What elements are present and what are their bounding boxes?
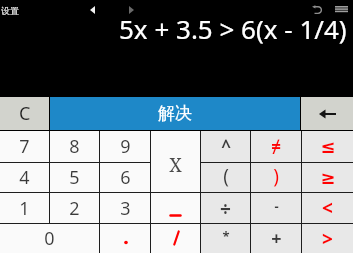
button[interactable]: 6 [100, 163, 150, 192]
button[interactable]: 7 [0, 131, 49, 162]
button[interactable]: ≤ [302, 131, 353, 162]
staticText: 5 [69, 165, 80, 190]
button[interactable]: ) [251, 163, 301, 192]
staticText: 8 [69, 134, 80, 159]
staticText: ( [223, 163, 229, 189]
staticText: 9 [120, 134, 131, 159]
staticText: ÷ [220, 196, 231, 222]
button[interactable]: 4 [0, 163, 49, 192]
button[interactable]: 2 [50, 193, 99, 223]
button[interactable]: 9 [100, 131, 150, 162]
button[interactable]: X [151, 131, 200, 192]
button[interactable]: Undo [308, 0, 326, 18]
button[interactable]: ( [201, 163, 250, 192]
button[interactable]: Backspace [301, 97, 353, 130]
staticText: ) [273, 163, 279, 189]
button[interactable]: > [302, 224, 353, 253]
staticText: - [274, 197, 279, 215]
staticText: 4 [19, 165, 30, 190]
button[interactable]: 设置 [1, 5, 19, 16]
staticText: ^ [221, 135, 231, 158]
staticText: ≤ [320, 136, 336, 157]
button[interactable]: ≠ [251, 131, 301, 162]
staticText: 0 [44, 226, 55, 251]
button[interactable]: Minus sign [151, 193, 200, 223]
staticText: + [271, 226, 282, 251]
button[interactable]: Divide [151, 224, 200, 253]
button[interactable]: 0 [0, 224, 99, 253]
button[interactable]: 8 [50, 131, 99, 162]
button[interactable]: ≥ [302, 163, 353, 192]
staticText: X [169, 152, 182, 178]
staticText: C [19, 101, 31, 126]
button[interactable]: 1 [0, 193, 49, 223]
button[interactable]: - [251, 193, 301, 223]
button[interactable]: ÷ [201, 193, 250, 223]
staticText: 6 [120, 165, 131, 190]
button[interactable]: Decimal point [100, 224, 150, 253]
button[interactable]: + [251, 224, 301, 253]
staticText: 2 [69, 196, 80, 221]
staticText: 设置 [1, 5, 19, 16]
button[interactable]: Previous expression [84, 2, 100, 18]
button[interactable]: 解决 [50, 97, 300, 130]
staticText: 3 [120, 196, 131, 221]
button[interactable]: C [0, 97, 49, 130]
button[interactable]: * [201, 224, 250, 253]
staticText: 5x + 3.5 > 6(x - 1/4) [119, 11, 347, 46]
staticText: 1 [19, 196, 30, 221]
button[interactable]: < [302, 193, 353, 223]
button[interactable]: Menu [333, 0, 350, 17]
staticText: 解决 [158, 103, 192, 124]
staticText: * [222, 227, 230, 245]
staticText: ≥ [320, 167, 336, 188]
button[interactable]: Next expression [123, 2, 139, 18]
staticText: 7 [19, 134, 30, 159]
button[interactable]: 5 [50, 163, 99, 192]
staticText: > [322, 226, 333, 252]
staticText: < [322, 195, 333, 221]
button[interactable]: 3 [100, 193, 150, 223]
button[interactable]: ^ [201, 131, 250, 162]
staticText: ≠ [271, 135, 281, 158]
